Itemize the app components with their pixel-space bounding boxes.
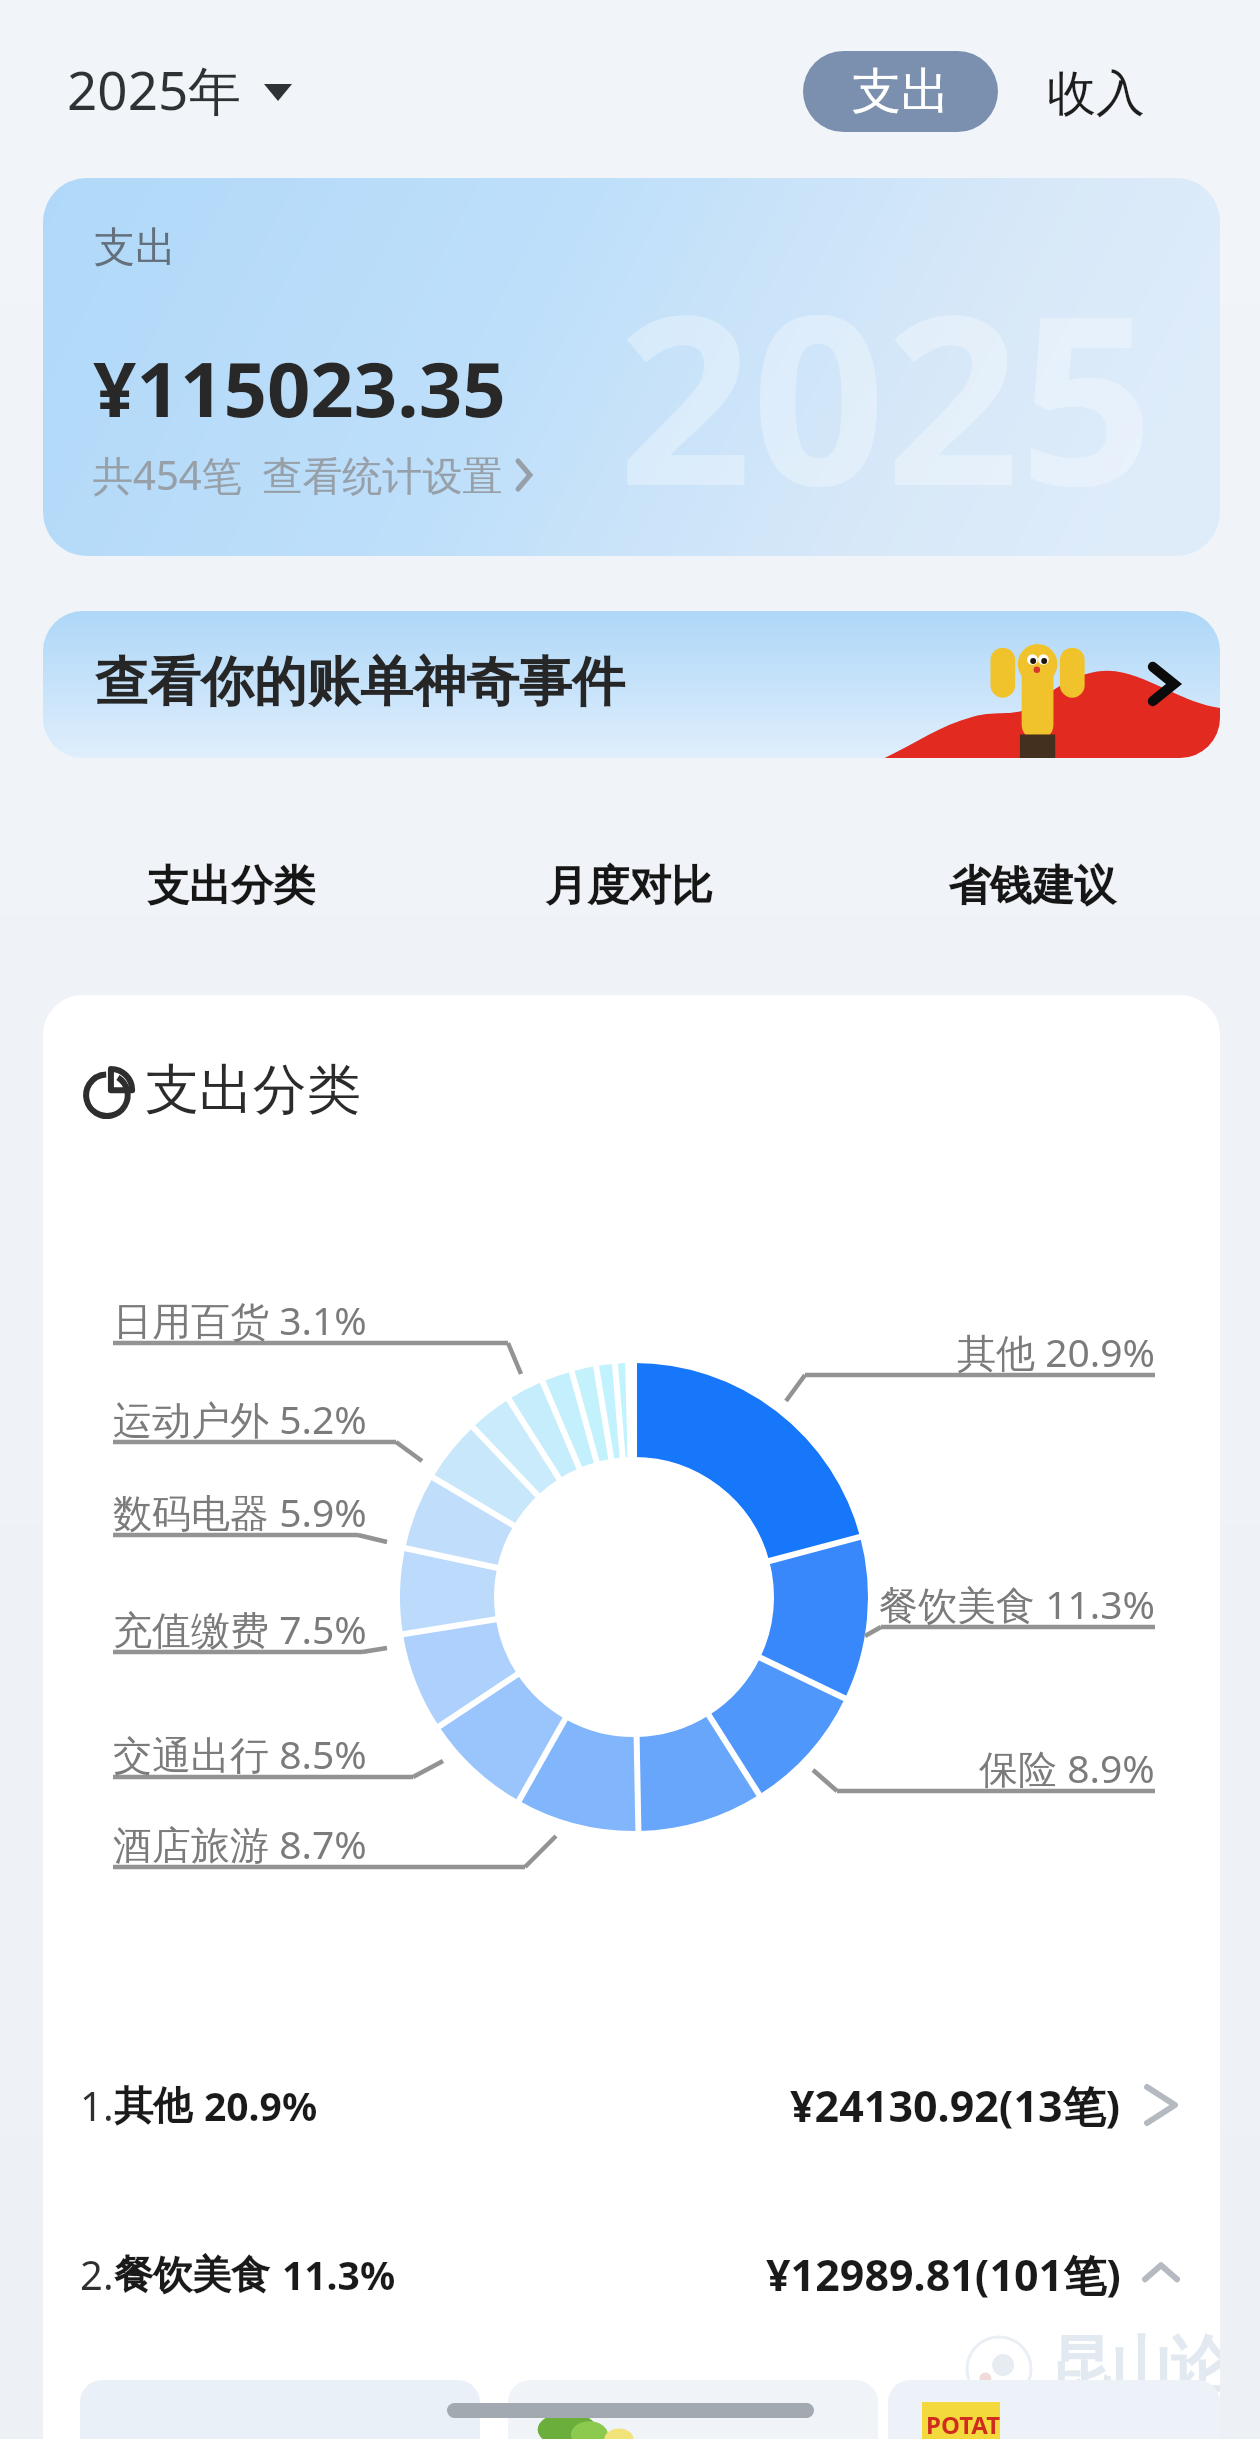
button[interactable]: 查看你的账单神奇事件: [43, 611, 1220, 758]
staticText: 昆山论坛: [1051, 2327, 1220, 2403]
staticText: 餐饮美食 11.3%: [879, 1577, 1155, 1630]
button[interactable]: 省钱建议: [922, 838, 1142, 934]
button[interactable]: 收入: [1031, 53, 1161, 134]
staticText: 充值缴费 7.5%: [113, 1602, 367, 1655]
button[interactable]: 2025年: [67, 53, 292, 125]
staticText: 日用百货 3.1%: [113, 1293, 367, 1346]
staticText: 酒店旅游 8.7%: [113, 1817, 367, 1870]
button[interactable]: [508, 2380, 878, 2439]
button[interactable]: 月度对比: [519, 838, 739, 934]
staticText: 运动户外 5.2%: [113, 1392, 367, 1445]
staticText: ¥115023.35: [93, 336, 506, 440]
staticText: POTAT: [926, 2408, 1001, 2439]
staticText: 11.3%: [282, 2248, 396, 2301]
staticText: 其他: [114, 2081, 192, 2130]
button[interactable]: 支出分类: [121, 838, 341, 934]
staticText: 共454笔 查看统计设置: [93, 447, 503, 502]
staticText: 支出: [94, 222, 176, 274]
staticText: 20.9%: [204, 2079, 318, 2132]
button[interactable]: [80, 2380, 480, 2439]
staticText: 1.: [80, 2078, 114, 2132]
staticText: ¥12989.81(101笔): [766, 2245, 1121, 2304]
button[interactable]: 共454笔 查看统计设置: [93, 447, 535, 502]
button[interactable]: POTAT: [888, 2380, 1220, 2439]
staticText: 保险 8.9%: [979, 1741, 1155, 1794]
staticText: 餐饮美食: [114, 2250, 270, 2299]
button[interactable]: 2025: [43, 178, 1220, 556]
staticText: 支出分类: [145, 1056, 361, 1124]
other: 收起: [1143, 2252, 1179, 2296]
button[interactable]: 1.: [43, 2050, 1220, 2160]
staticText: 收入: [1047, 63, 1145, 125]
staticText: 支出: [852, 61, 950, 123]
button[interactable]: 2.: [43, 2219, 1220, 2329]
button[interactable]: 打开账单神奇事件: [1136, 645, 1192, 723]
staticText: 2025: [618, 235, 1154, 554]
staticText: 其他 20.9%: [957, 1325, 1155, 1378]
button[interactable]: 支出: [803, 51, 998, 132]
staticText: 交通出行 8.5%: [113, 1727, 367, 1780]
staticText: 查看你的账单神奇事件: [95, 649, 625, 716]
staticText: 支出分类: [147, 860, 315, 913]
staticText: 2025年: [67, 53, 242, 125]
staticText: 省钱建议: [948, 860, 1116, 913]
staticText: 月度对比: [545, 860, 713, 913]
staticText: ¥24130.92(13笔): [790, 2076, 1121, 2135]
staticText: 2.: [80, 2247, 114, 2301]
staticText: 数码电器 5.9%: [113, 1485, 367, 1538]
other: 展开: [1143, 2083, 1179, 2127]
